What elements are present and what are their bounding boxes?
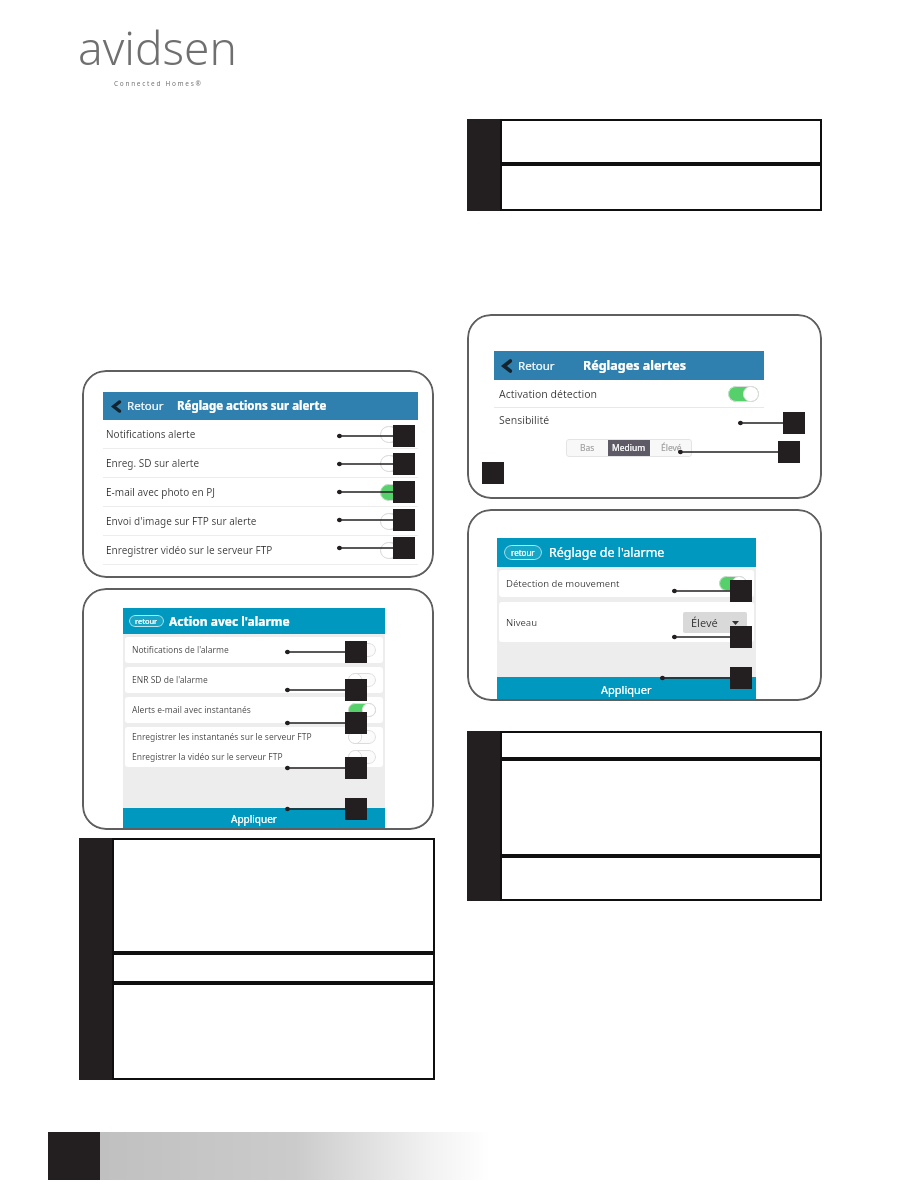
button[interactable]: Notifications alerte	[103, 420, 418, 448]
staticText: Enregistrer la vidéo sur le serveur FTP	[132, 751, 348, 763]
staticText: Enregistrer vidéo sur le serveur FTP	[106, 543, 380, 557]
button[interactable]: Désactivé	[380, 426, 414, 443]
staticText: Élevé	[661, 442, 682, 454]
staticText: Retour	[127, 398, 164, 414]
button[interactable]: Désactivé	[380, 513, 414, 530]
staticText: Détection de mouvement	[506, 577, 719, 590]
button[interactable]: Élevé	[650, 439, 692, 457]
staticText: Alerts e-mail avec instantanés	[132, 704, 348, 716]
button[interactable]: Activé	[380, 484, 414, 501]
button[interactable]: Désactivé	[348, 730, 376, 744]
button[interactable]: Medium	[608, 439, 650, 457]
button[interactable]: retour	[123, 608, 385, 634]
staticText: Appliquer	[231, 812, 277, 826]
staticText: retour	[511, 547, 535, 558]
staticText: Enreg. SD sur alerte	[106, 456, 380, 470]
button[interactable]: Activé	[719, 576, 747, 591]
staticText: Enregistrer les instantanés sur le serve…	[132, 731, 348, 743]
button[interactable]: retour	[497, 538, 756, 567]
button[interactable]: Activation détection	[494, 380, 764, 407]
button[interactable]: Désactivé	[380, 455, 414, 472]
staticText: Action avec l'alarme	[169, 613, 290, 629]
button[interactable]: Élevé	[683, 612, 747, 633]
staticText: Élevé	[691, 615, 718, 630]
staticText: Bas	[580, 442, 595, 454]
staticText: Retour	[518, 358, 555, 374]
staticText: Notifications de l'alarme	[132, 644, 348, 656]
button[interactable]: Retour	[103, 392, 418, 420]
button[interactable]: Enregistrer vidéo sur le serveur FTP	[103, 536, 418, 564]
staticText: Sensibilité	[499, 413, 550, 427]
staticText: E-mail avec photo en PJ	[106, 485, 380, 499]
button[interactable]: Détection de mouvement	[499, 570, 754, 597]
button[interactable]: E-mail avec photo en PJ	[103, 478, 418, 506]
button[interactable]: Enregistrer les instantanés sur le serve…	[125, 727, 383, 767]
button[interactable]: Alerts e-mail avec instantanés	[125, 697, 383, 723]
button[interactable]: Retour	[494, 351, 764, 380]
staticText: Niveau	[506, 616, 683, 629]
button[interactable]: Notifications de l'alarme	[125, 637, 383, 663]
staticText: C o n n e c t e d H o m e s ®	[114, 79, 201, 88]
button[interactable]: Appliquer	[497, 677, 756, 701]
staticText: Réglage actions sur alerte	[177, 398, 327, 414]
staticText: Réglages alertes	[583, 357, 687, 374]
staticText: avidsen	[78, 16, 237, 79]
button[interactable]: Enreg. SD sur alerte	[103, 449, 418, 477]
staticText: retour	[135, 616, 158, 626]
button[interactable]: Activé	[728, 386, 759, 402]
staticText: Réglage de l'alarme	[549, 544, 665, 561]
staticText: Medium	[612, 442, 646, 454]
button[interactable]: Désactivé	[380, 542, 414, 559]
staticText: Envoi d'image sur FTP sur alerte	[106, 514, 380, 528]
staticText: ENR SD de l'alarme	[132, 674, 348, 686]
staticText: Activation détection	[499, 387, 728, 401]
button[interactable]: Appliquer	[123, 808, 385, 830]
button[interactable]: Envoi d'image sur FTP sur alerte	[103, 507, 418, 535]
staticText: Appliquer	[601, 682, 652, 697]
button[interactable]: Activé	[348, 703, 376, 717]
button[interactable]: Désactivé	[348, 643, 376, 657]
staticText: Notifications alerte	[106, 427, 380, 441]
button[interactable]: Bas	[566, 439, 608, 457]
button[interactable]: Désactivé	[348, 673, 376, 687]
button[interactable]: Désactivé	[348, 750, 376, 764]
button[interactable]: ENR SD de l'alarme	[125, 667, 383, 693]
